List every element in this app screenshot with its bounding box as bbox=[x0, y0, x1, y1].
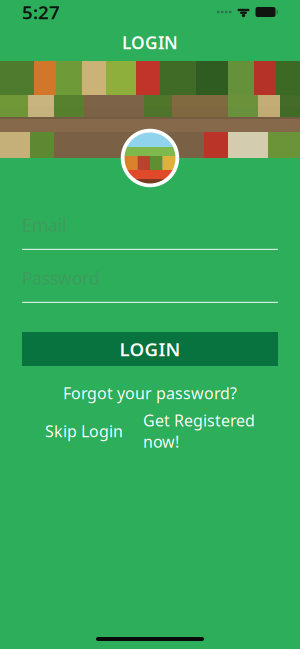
button[interactable]: LOGIN bbox=[22, 332, 278, 366]
staticText: Email bbox=[22, 213, 66, 236]
staticText: Password bbox=[22, 266, 100, 289]
staticText: Forgot your password? bbox=[63, 382, 237, 404]
button[interactable]: Skip Login bbox=[39, 421, 129, 441]
button[interactable]: Forgot your password? bbox=[0, 383, 300, 403]
staticText: Skip Login bbox=[45, 420, 123, 442]
button[interactable]: Get Registered now! bbox=[137, 421, 261, 441]
staticText: LOGIN bbox=[119, 337, 180, 361]
staticText: 5:27 bbox=[22, 0, 60, 24]
staticText: LOGIN bbox=[122, 31, 178, 54]
staticText: Get Registered now! bbox=[143, 410, 255, 452]
